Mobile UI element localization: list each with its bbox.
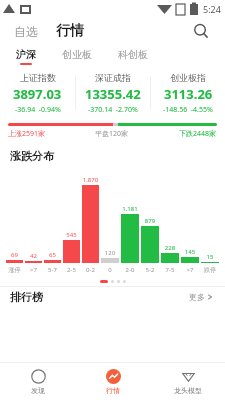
button[interactable]: 搜索 (189, 19, 213, 43)
button[interactable]: 科创板 (116, 48, 150, 65)
staticText: 5-7 (44, 266, 61, 274)
button[interactable]: 行情 (75, 363, 150, 400)
staticText: 跌停 (201, 266, 219, 274)
staticText: 1,181 (121, 205, 139, 213)
staticText: 沪深 (16, 48, 36, 61)
button[interactable]: 发现 (0, 363, 75, 400)
staticText: 7-5 (161, 266, 179, 274)
staticText: 行情 (106, 386, 120, 395)
staticText: 2-0 (121, 266, 139, 274)
staticText: -148.56 -4.55% (163, 105, 213, 115)
staticText: 5-2 (141, 266, 159, 274)
staticText: 545 (63, 231, 80, 239)
staticText: 3897.03 (13, 85, 62, 103)
staticText: 平盘120家 (95, 129, 129, 139)
staticText: 65 (44, 251, 61, 259)
staticText: 42 (25, 252, 42, 260)
staticText: 2-5 (63, 266, 80, 274)
staticText: 排行榜 (10, 290, 43, 304)
staticText: 228 (161, 244, 179, 252)
button[interactable]: 更多 (187, 290, 215, 304)
staticText: 上证指数 (20, 72, 56, 83)
staticText: 深证成指 (95, 72, 131, 83)
staticText: 0 (101, 266, 119, 274)
button[interactable]: 深证成指 (76, 69, 150, 117)
staticText: 1,870 (82, 176, 99, 184)
staticText: 涨跌分布 (10, 149, 54, 163)
staticText: 15 (201, 253, 219, 261)
staticText: 上涨2591家 (8, 129, 46, 139)
staticText: 下跌2448家 (179, 129, 217, 139)
button[interactable]: 行情 (54, 19, 86, 43)
button[interactable]: 上证指数 (0, 69, 75, 117)
staticText: 13355.42 (85, 85, 141, 103)
button[interactable]: 自选 (12, 21, 40, 42)
staticText: 145 (181, 248, 199, 256)
button[interactable]: 龙头模型 (150, 363, 225, 400)
staticText: 0-2 (82, 266, 99, 274)
button[interactable]: 沪深 (14, 48, 38, 65)
staticText: 创业板指 (170, 72, 206, 83)
staticText: 更多 (189, 292, 205, 302)
staticText: 行情 (56, 22, 84, 40)
button[interactable]: 创业板 (60, 48, 94, 65)
staticText: 69 (6, 251, 23, 259)
button[interactable]: 创业板指 (151, 69, 225, 117)
staticText: 879 (141, 217, 159, 225)
staticText: 创业板 (62, 48, 92, 61)
staticText: 龙头模型 (174, 386, 202, 395)
staticText: >7 (25, 266, 42, 274)
staticText: 自选 (14, 24, 38, 39)
staticText: -36.94 -0.94% (15, 105, 61, 115)
staticText: >7 (181, 266, 199, 274)
staticText: 涨停 (6, 266, 23, 274)
staticText: 120 (101, 249, 119, 257)
staticText: -370.14 -2.70% (88, 105, 138, 115)
staticText: 发现 (31, 386, 45, 395)
staticText: 3113.26 (164, 85, 213, 103)
staticText: 科创板 (118, 48, 148, 61)
staticText: 5:24 (203, 3, 221, 15)
